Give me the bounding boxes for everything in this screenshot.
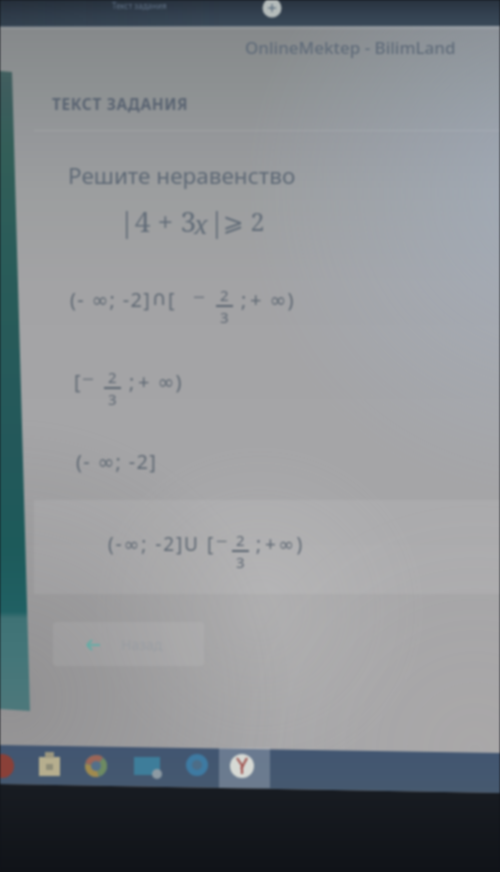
- staticText: ;: [256, 531, 262, 557]
- button[interactable]: (- ∞; -2]: [55, 272, 355, 330]
- staticText: [: [207, 531, 214, 557]
- staticText: 2: [236, 530, 245, 550]
- staticText: +∞): [265, 531, 305, 557]
- staticText: ⩾ 2: [223, 204, 265, 238]
- staticText: ⎯: [83, 368, 93, 388]
- other: New tab: [262, 0, 284, 22]
- staticText: ТЕКСТ ЗАДАНИЯ: [52, 93, 189, 114]
- button[interactable]: Назад: [53, 622, 204, 666]
- staticText: [: [74, 368, 81, 395]
- staticText: ⎯: [194, 286, 204, 306]
- staticText: + ∞): [250, 286, 295, 313]
- staticText: ∩: [152, 286, 167, 309]
- staticText: x: [194, 207, 208, 241]
- button[interactable]: (- ∞; -2]: [55, 440, 255, 486]
- staticText: 2: [220, 285, 229, 305]
- staticText: |: [209, 202, 225, 240]
- staticText: Решите неравенство: [68, 160, 296, 191]
- staticText: ⎯: [217, 531, 227, 550]
- staticText: (- ∞; -2]: [76, 448, 158, 475]
- staticText: |4 + 3: [119, 202, 197, 240]
- staticText: 3: [236, 552, 245, 572]
- staticText: ;: [241, 286, 247, 313]
- staticText: 3: [108, 389, 117, 409]
- staticText: + ∞): [138, 368, 183, 395]
- button[interactable]: [: [55, 354, 295, 412]
- staticText: ;: [129, 368, 135, 395]
- staticText: 2: [108, 367, 117, 387]
- staticText: [: [168, 286, 175, 313]
- staticText: (- ∞; -2]: [70, 286, 152, 313]
- staticText: 3: [220, 307, 229, 327]
- staticText: (-∞; -2]U: [108, 531, 200, 557]
- staticText: OnlineMektep - BilimLand: [245, 36, 456, 59]
- staticText: Текст задания: [112, 0, 167, 11]
- button[interactable]: (-∞; -2]U: [34, 500, 500, 594]
